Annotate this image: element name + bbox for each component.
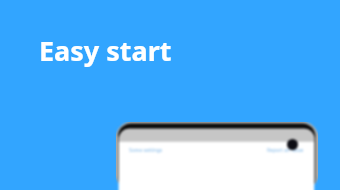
- other: Front camera: [287, 139, 298, 150]
- button[interactable]: Some settings: [116, 122, 318, 190]
- button[interactable]: Report an issue: [267, 147, 304, 154]
- staticText: Easy start: [39, 32, 172, 69]
- button[interactable]: Some settings: [129, 147, 163, 154]
